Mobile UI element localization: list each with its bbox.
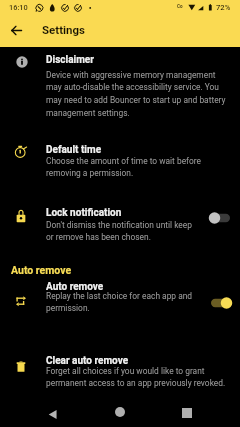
- staticText: Lock notification: [46, 207, 122, 219]
- staticText: Choose the amount of time to wait before…: [46, 156, 226, 178]
- button[interactable]: Lock notification: [46, 207, 122, 219]
- staticText: Forget all choices if you would like to …: [46, 366, 226, 388]
- staticText: 72%: [216, 3, 231, 12]
- button[interactable]: Disclaimer info: [9, 49, 35, 75]
- staticText: Settings: [42, 23, 86, 36]
- staticText: Auto remove: [46, 281, 104, 293]
- button[interactable]: Back: [40, 402, 64, 426]
- staticText: Co: [177, 4, 183, 9]
- staticText: Disclaimer: [46, 54, 94, 66]
- button[interactable]: Clear auto remove: [46, 355, 129, 367]
- button[interactable]: Default time: [8, 138, 34, 164]
- staticText: Auto remove: [11, 264, 72, 276]
- button[interactable]: Back: [2, 16, 31, 45]
- staticText: 16:10: [9, 3, 28, 12]
- staticText: Default time: [46, 144, 102, 156]
- button[interactable]: Auto remove: [46, 281, 104, 293]
- button[interactable]: Auto remove: [8, 288, 34, 314]
- staticText: Clear auto remove: [46, 355, 129, 367]
- button[interactable]: Disabled: [203, 206, 237, 230]
- button[interactable]: Disclaimer: [46, 54, 94, 66]
- button[interactable]: Recent apps: [175, 401, 199, 425]
- button[interactable]: Clear auto remove: [8, 353, 34, 379]
- button[interactable]: Settings: [42, 23, 86, 36]
- button[interactable]: Lock notification: [8, 202, 34, 228]
- staticText: Replay the last choice for each app and …: [46, 291, 196, 313]
- button[interactable]: Default time: [46, 144, 102, 156]
- staticText: Don't dismiss the notification until kee…: [46, 220, 196, 242]
- button[interactable]: Enabled: [203, 291, 237, 315]
- button[interactable]: Home: [108, 400, 132, 424]
- staticText: Device with aggressive memory management…: [46, 70, 226, 118]
